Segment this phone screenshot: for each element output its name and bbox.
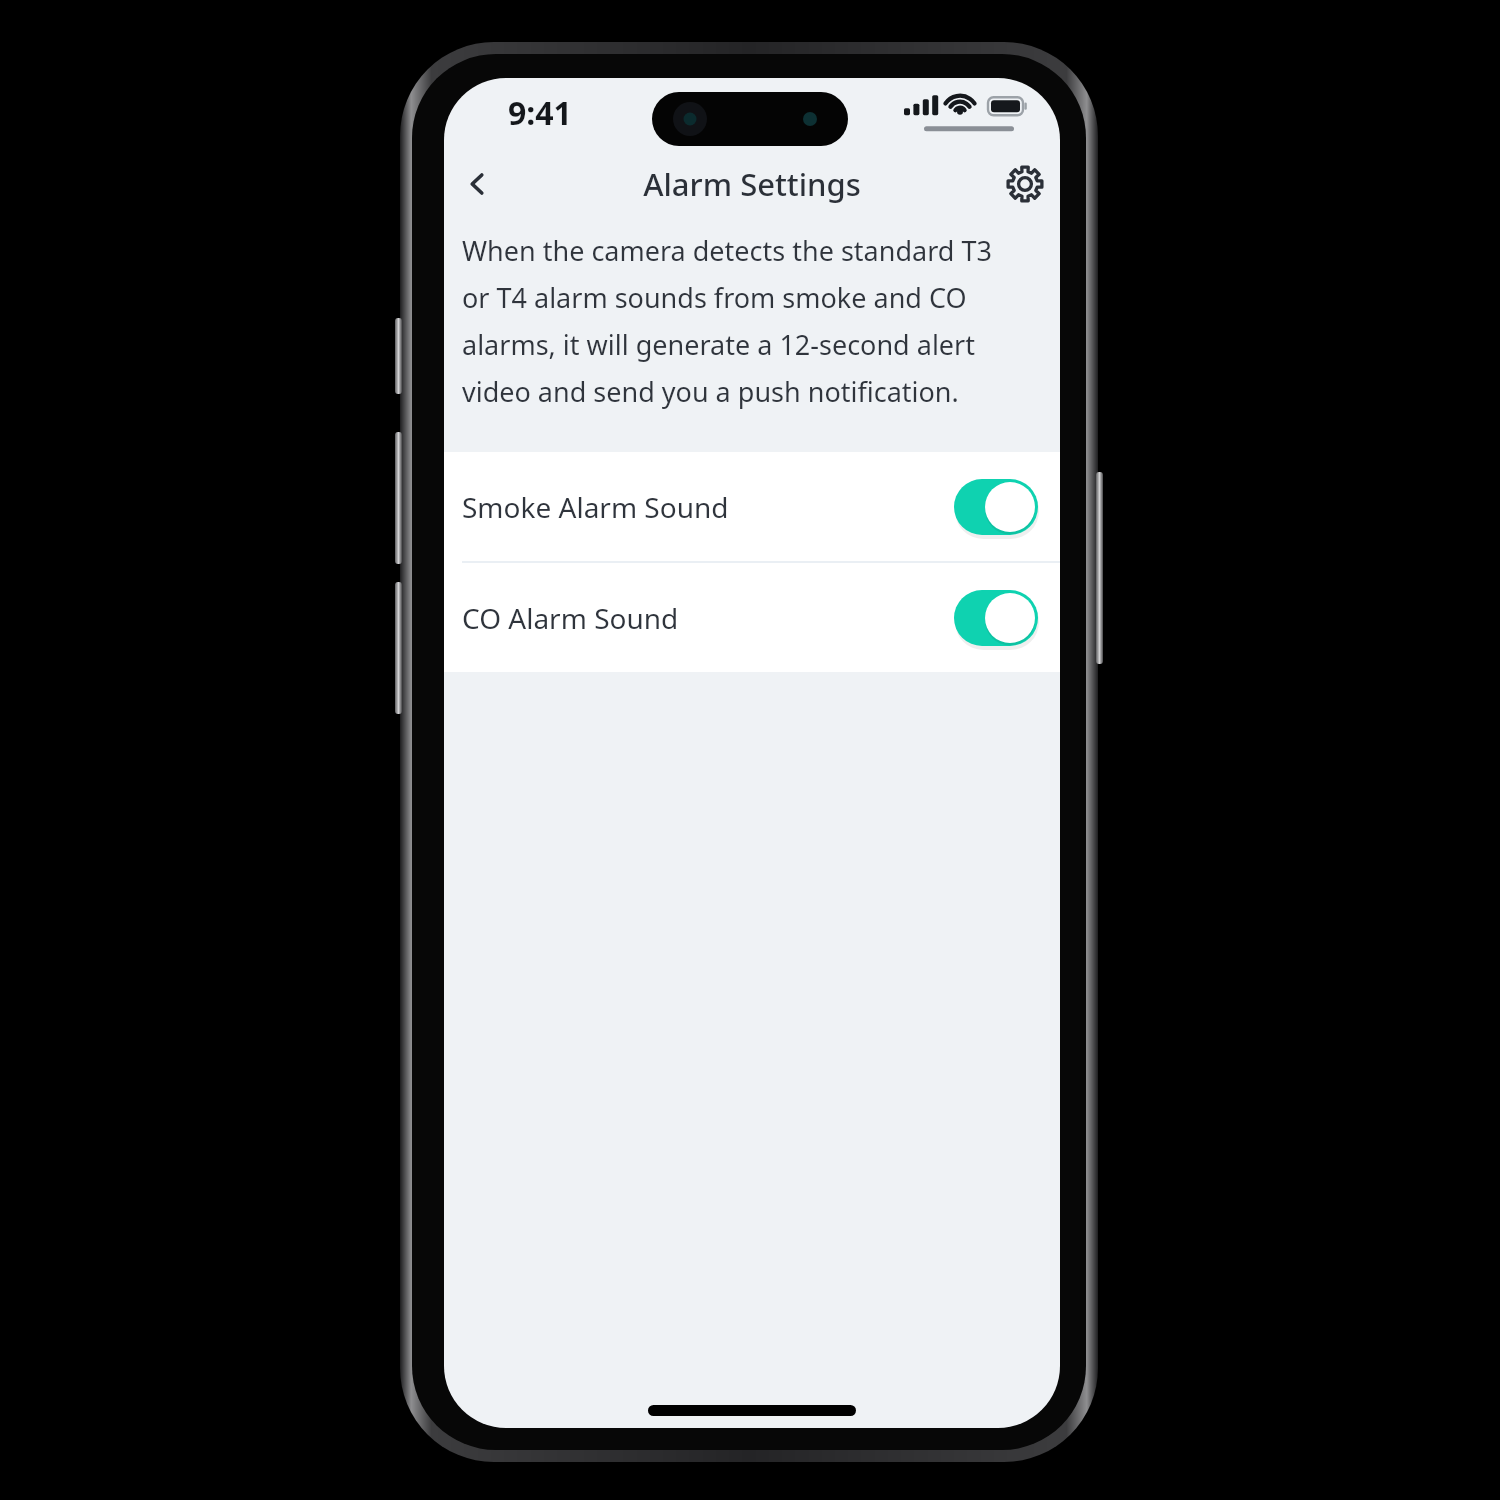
staticText: When the camera detects the standard T3 …: [462, 232, 992, 410]
staticText: CO Alarm Sound: [462, 599, 679, 637]
button[interactable]: CO Alarm Sound toggle: [954, 590, 1038, 646]
button[interactable]: Back: [448, 155, 506, 213]
button[interactable]: Smoke Alarm Sound toggle: [954, 479, 1038, 535]
button[interactable]: Settings: [996, 155, 1054, 213]
button[interactable]: Smoke Alarm Sound: [444, 452, 1060, 561]
staticText: 9:41: [508, 91, 572, 135]
staticText: Alarm Settings: [643, 163, 861, 205]
staticText: Smoke Alarm Sound: [462, 488, 729, 526]
button[interactable]: CO Alarm Sound: [444, 563, 1060, 672]
